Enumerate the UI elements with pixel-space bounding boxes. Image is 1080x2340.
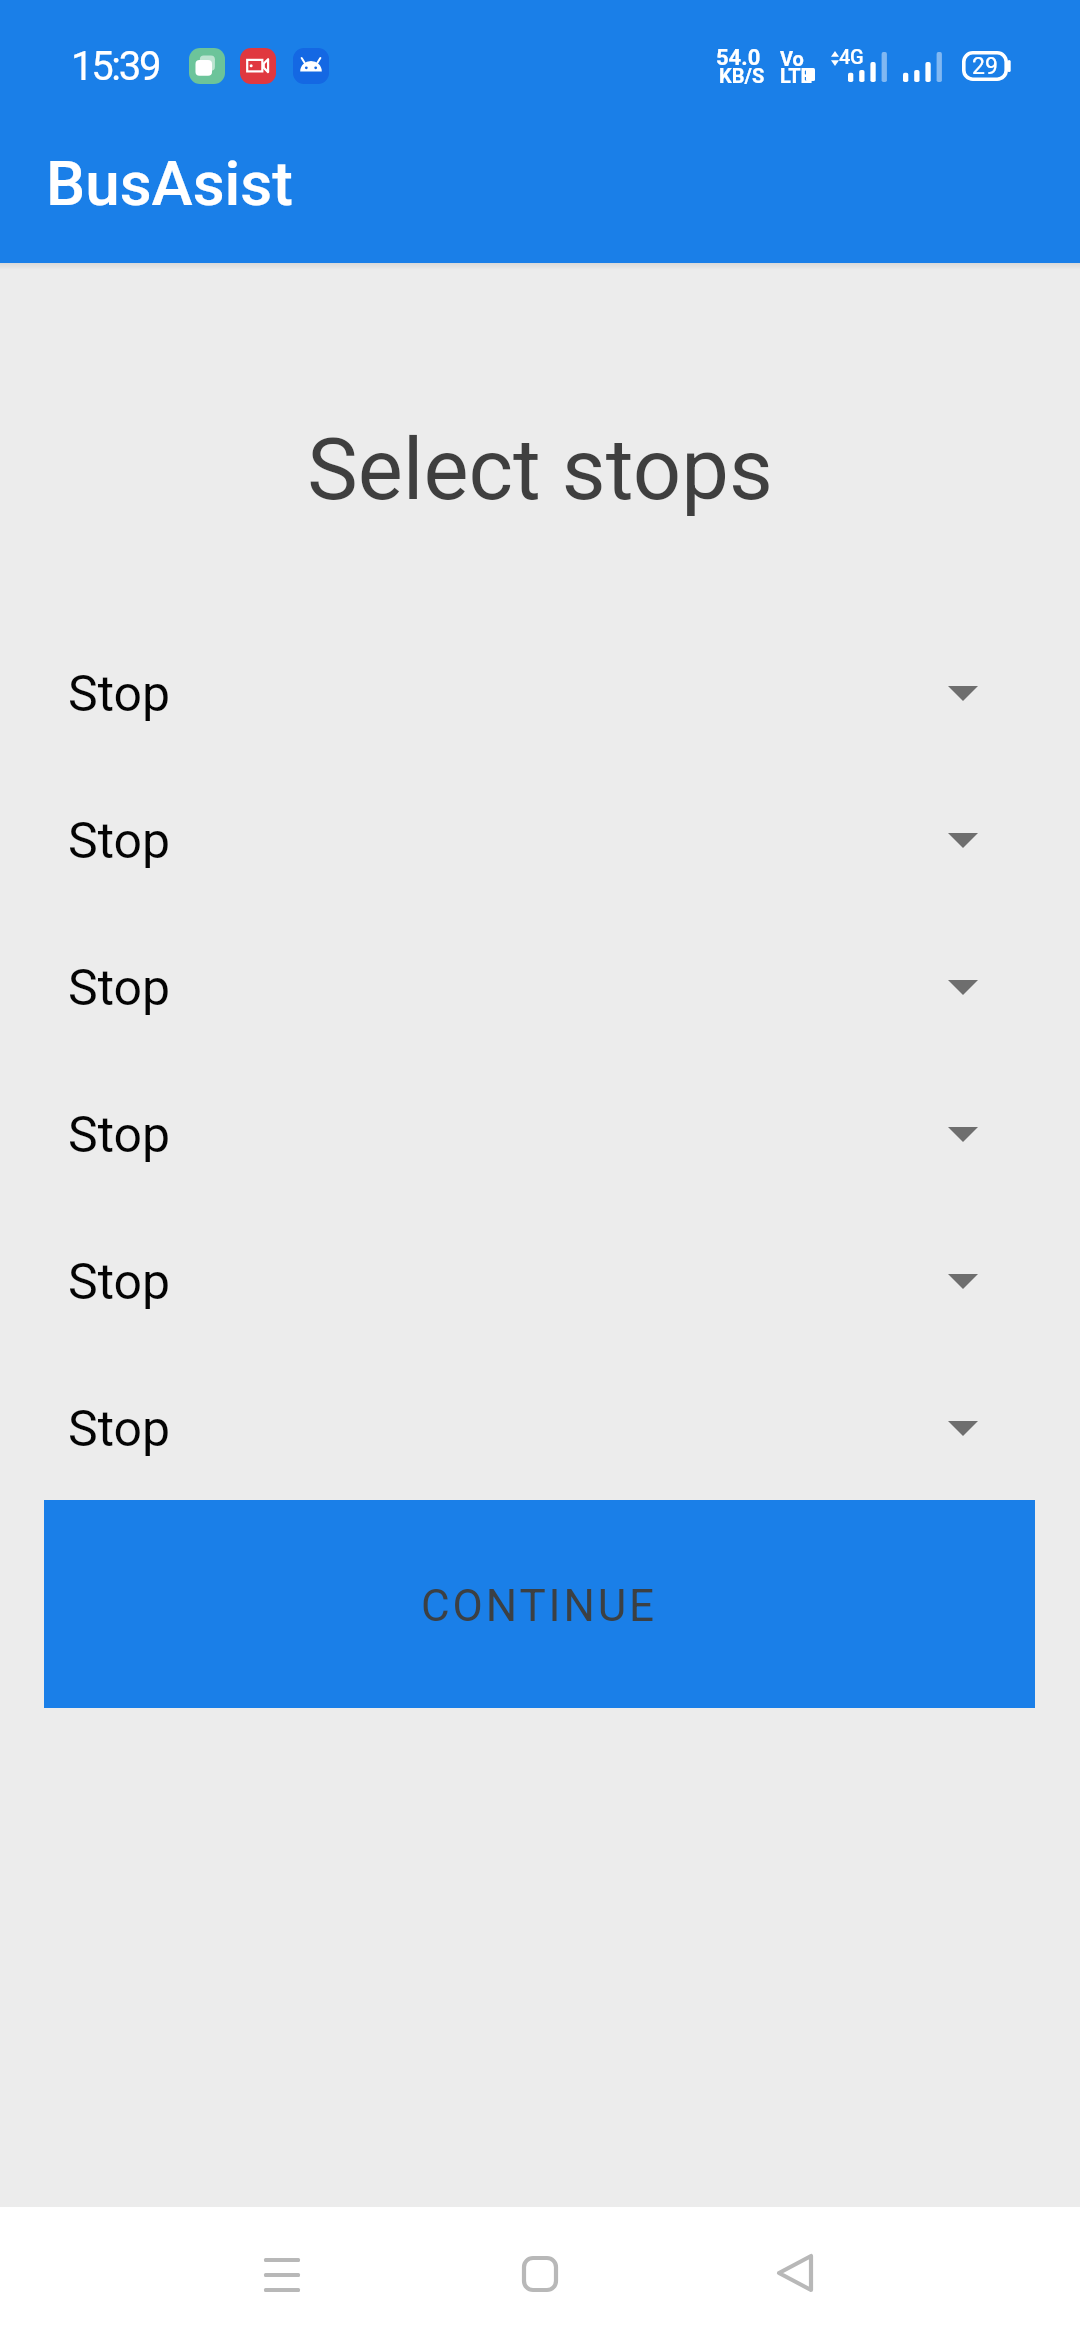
staticText: 54.0 [716, 45, 761, 71]
button[interactable]: CONTINUE [44, 1500, 1035, 1708]
staticText: Stop [68, 812, 171, 871]
staticText: 4G [839, 45, 864, 68]
button[interactable]: Home [480, 2207, 600, 2340]
staticText: LTE [780, 64, 812, 87]
staticText: 29 [972, 53, 998, 80]
staticText: Select stops [0, 420, 1080, 520]
button[interactable]: Recent apps [222, 2207, 342, 2340]
staticText: Stop [68, 959, 171, 1018]
staticText: Stop [68, 1106, 171, 1165]
staticText: 15:39 [71, 43, 160, 90]
button[interactable]: Stop [0, 1392, 1080, 1500]
staticText: BusAsist [46, 147, 293, 220]
staticText: Vo [780, 47, 804, 70]
staticText: Stop [68, 1253, 171, 1312]
button[interactable]: Stop [0, 804, 1080, 951]
button[interactable]: Stop [0, 1098, 1080, 1245]
button[interactable]: Back [735, 2207, 855, 2340]
button[interactable]: Stop [0, 1245, 1080, 1392]
button[interactable]: Stop [0, 951, 1080, 1098]
button[interactable]: Stop [0, 657, 1080, 804]
staticText: KB/S [719, 64, 765, 87]
staticText: Stop [68, 1400, 171, 1459]
staticText: CONTINUE [421, 1580, 658, 1632]
staticText: Stop [68, 665, 171, 724]
